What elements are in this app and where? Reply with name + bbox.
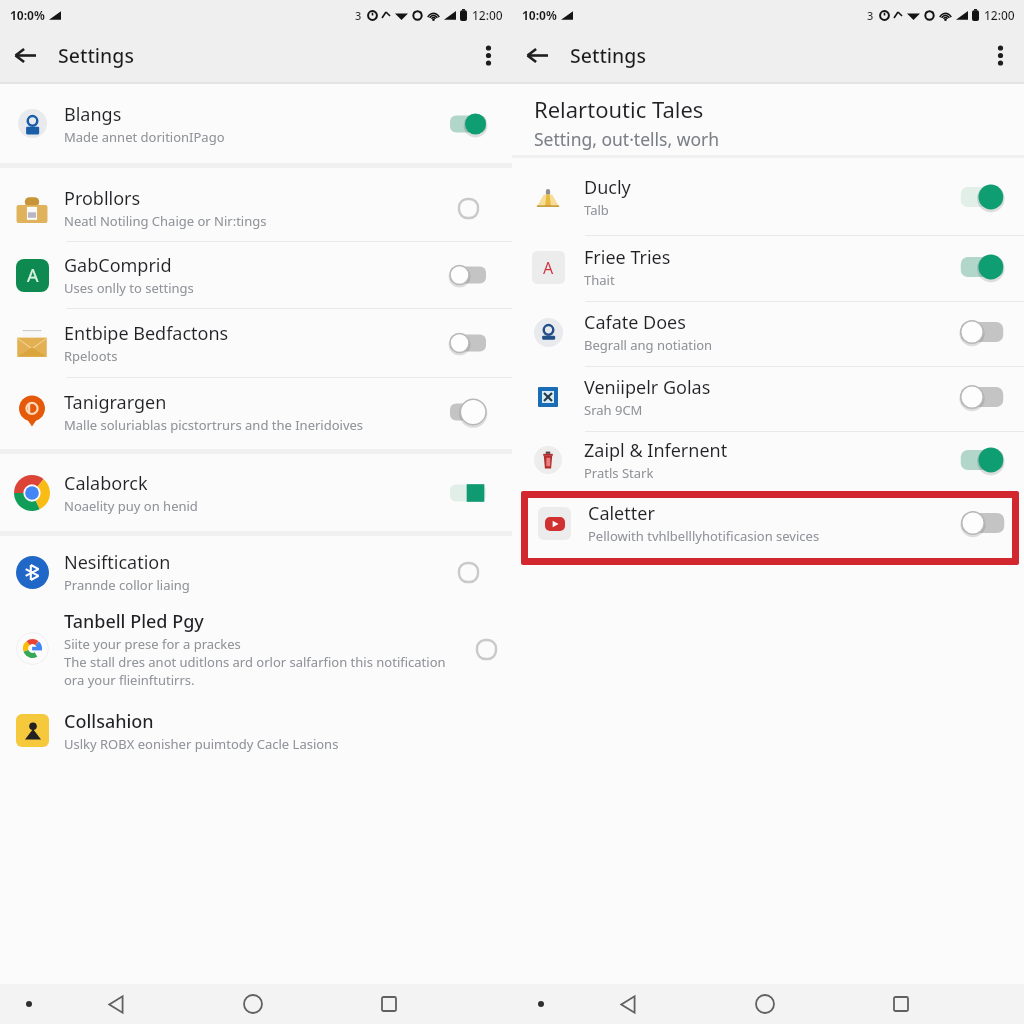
- staticText: Begrall ang notiation: [584, 336, 713, 354]
- staticText: Friee Tries: [584, 245, 671, 270]
- button[interactable]: Back: [570, 984, 686, 1024]
- staticText: Pellowith tvhlbelllyhotificasion sevices: [588, 527, 820, 545]
- button[interactable]: Switch on: [443, 477, 493, 509]
- staticText: Ducly: [584, 175, 631, 200]
- staticText: Rpeloots: [64, 347, 118, 365]
- button[interactable]: Cafate Does: [512, 302, 1024, 366]
- staticText: A: [27, 263, 39, 288]
- button[interactable]: Veniipelr Golas: [512, 367, 1024, 431]
- button[interactable]: Recent apps: [844, 984, 1024, 1024]
- button[interactable]: Switch on: [443, 108, 493, 140]
- button[interactable]: Navigate up: [512, 29, 562, 82]
- staticText: Malle soluriablas picstortrurs and the I…: [64, 416, 364, 434]
- button[interactable]: Switch on: [957, 181, 1007, 213]
- staticText: Tanigrargen: [64, 390, 167, 415]
- button[interactable]: Checkbox: [445, 193, 491, 223]
- staticText: 3: [355, 8, 362, 23]
- staticText: 10:0%: [522, 7, 557, 23]
- button[interactable]: Switch off: [957, 381, 1007, 413]
- button[interactable]: Recent apps: [332, 984, 512, 1024]
- button[interactable]: Calaborck: [0, 454, 512, 531]
- button[interactable]: Switch off: [443, 327, 493, 359]
- button[interactable]: Switch off: [443, 259, 493, 291]
- staticText: 12:00: [984, 7, 1015, 23]
- staticText: Cafate Does: [584, 310, 686, 335]
- button[interactable]: Switch off: [443, 396, 493, 428]
- button[interactable]: Collsahion: [0, 695, 512, 761]
- staticText: Nesiftication: [64, 550, 171, 575]
- button[interactable]: Caletter: [521, 491, 1019, 551]
- button[interactable]: Switch off: [957, 316, 1007, 348]
- staticText: Prannde collor liaing: [64, 576, 190, 594]
- staticText: Made annet doritionIPago: [64, 128, 225, 146]
- staticText: Veniipelr Golas: [584, 375, 711, 400]
- button[interactable]: Zaipl & Infernent: [512, 432, 1024, 491]
- staticText: Noaelity puy on henid: [64, 497, 198, 515]
- button[interactable]: Tanigrargen: [0, 378, 512, 449]
- staticText: Pratls Stark: [584, 464, 654, 482]
- staticText: Srah 9CM: [584, 401, 643, 419]
- staticText: 10:0%: [10, 7, 45, 23]
- button[interactable]: More options: [464, 29, 512, 82]
- button[interactable]: Blangs: [0, 84, 512, 163]
- button[interactable]: Checkbox: [463, 634, 509, 664]
- staticText: The stall dres anot uditlons ard orlor s…: [64, 653, 446, 671]
- button[interactable]: A: [0, 242, 512, 308]
- staticText: GabComprid: [64, 253, 172, 278]
- staticText: Setting, out·tells, worh: [534, 127, 720, 151]
- staticText: 3: [867, 8, 874, 23]
- staticText: Tanbell Pled Pgy: [64, 609, 204, 634]
- staticText: Entbipe Bedfactons: [64, 321, 229, 346]
- button[interactable]: Home: [174, 984, 332, 1024]
- staticText: ora your flieinftutirrs.: [64, 671, 195, 689]
- staticText: Zaipl & Infernent: [584, 438, 728, 463]
- button[interactable]: Switch on: [957, 251, 1007, 283]
- button[interactable]: Switch off: [958, 507, 1008, 539]
- staticText: Relartoutic Tales: [534, 94, 704, 124]
- staticText: Settings: [570, 42, 646, 69]
- button[interactable]: Tanbell Pled Pgy: [0, 602, 512, 695]
- button[interactable]: More options: [976, 29, 1024, 82]
- button[interactable]: Navigate up: [0, 29, 50, 82]
- staticText: Thait: [584, 271, 615, 289]
- staticText: Blangs: [64, 102, 122, 127]
- button[interactable]: A: [512, 236, 1024, 301]
- button[interactable]: Probllors: [0, 168, 512, 241]
- staticText: Probllors: [64, 186, 141, 211]
- staticText: Uslky ROBX eonisher puimtody Cacle Lasio…: [64, 735, 339, 753]
- staticText: Calaborck: [64, 471, 148, 496]
- staticText: Caletter: [588, 501, 655, 526]
- button[interactable]: Switch on: [957, 444, 1007, 476]
- staticText: Collsahion: [64, 709, 154, 734]
- staticText: Settings: [58, 42, 134, 69]
- staticText: Talb: [584, 201, 609, 219]
- button[interactable]: Checkbox: [445, 557, 491, 587]
- staticText: Neatl Notiling Chaige or Nir:tings: [64, 212, 267, 230]
- button[interactable]: Nesiftication: [0, 536, 512, 602]
- button[interactable]: Home: [686, 984, 844, 1024]
- button[interactable]: Ducly: [512, 158, 1024, 235]
- staticText: A: [543, 257, 554, 279]
- staticText: Uses onlly to settings: [64, 279, 194, 297]
- button[interactable]: Back: [58, 984, 174, 1024]
- button[interactable]: Entbipe Bedfactons: [0, 309, 512, 377]
- staticText: 12:00: [472, 7, 503, 23]
- staticText: Siite your prese for a prackes: [64, 635, 241, 653]
